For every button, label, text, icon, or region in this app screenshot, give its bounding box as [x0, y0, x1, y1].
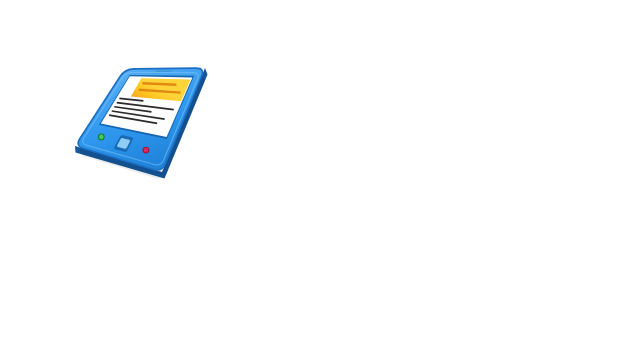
button[interactable]: Smartphone showing a message [0, 0, 640, 360]
